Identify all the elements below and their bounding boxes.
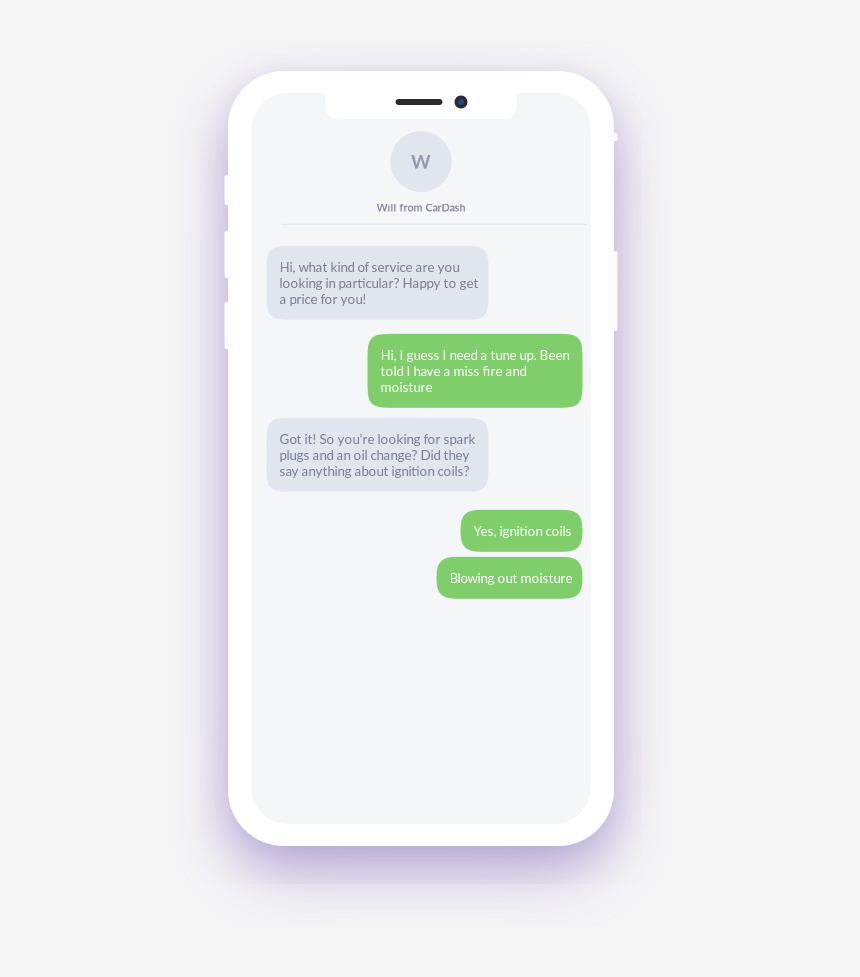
staticText: Yes, ignition coils	[473, 523, 571, 539]
staticText: W	[411, 150, 431, 173]
button[interactable]: Hi, I guess I need a tune up. Been told …	[367, 334, 582, 408]
button[interactable]: Hi, what kind of service are you looking…	[266, 246, 488, 320]
button[interactable]: Will from CarDash, contact details	[251, 131, 590, 214]
staticText: Hi, what kind of service are you looking…	[279, 259, 478, 307]
button[interactable]: Got it! So you’re looking for spark plug…	[266, 418, 488, 492]
staticText: Blowing out moisture	[449, 570, 572, 586]
staticText: Got it! So you’re looking for spark plug…	[279, 431, 475, 479]
button[interactable]: Blowing out moisture	[436, 557, 582, 599]
staticText: Hi, I guess I need a tune up. Been told …	[380, 347, 569, 395]
staticText: Will from CarDash	[376, 201, 465, 214]
button[interactable]: Yes, ignition coils	[460, 510, 582, 552]
